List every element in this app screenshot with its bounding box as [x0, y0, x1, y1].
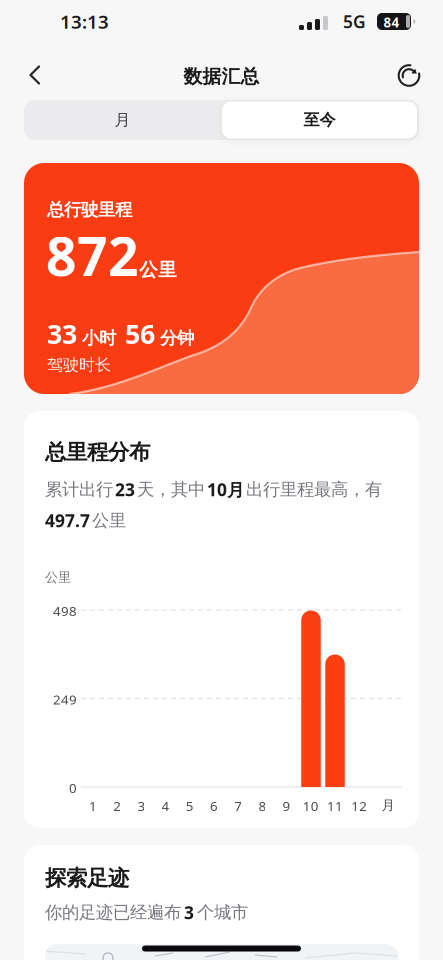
staticText: 23	[115, 478, 135, 501]
staticText: 9	[283, 797, 291, 815]
staticText: 1	[89, 797, 97, 815]
staticText: 56	[125, 316, 155, 351]
staticText: 总里程分布	[45, 439, 150, 465]
staticText: 3	[184, 901, 194, 924]
staticText: 总行驶里程	[47, 199, 132, 220]
staticText: 84	[383, 13, 399, 31]
button[interactable]: 月	[24, 100, 221, 140]
staticText: 月	[381, 797, 394, 813]
staticText: 11	[327, 797, 343, 815]
staticText: 498	[53, 602, 77, 620]
staticText: 249	[53, 690, 77, 708]
staticText: 3	[137, 797, 145, 815]
staticText: 公里	[45, 569, 71, 585]
staticText: 5	[186, 797, 194, 815]
staticText: 公里	[92, 510, 126, 531]
staticText: 至今	[303, 110, 335, 130]
staticText: 8	[258, 797, 266, 815]
staticText: 个城市	[197, 902, 248, 923]
staticText: 出行里程最高，有	[246, 479, 382, 500]
staticText: 10月	[207, 478, 244, 501]
staticText: 公里	[139, 258, 177, 281]
staticText: 驾驶时长	[47, 355, 111, 375]
staticText: 7	[234, 797, 242, 815]
staticText: 探索足迹	[45, 865, 129, 891]
staticText: 天，其中	[137, 479, 205, 500]
staticText: 0	[69, 779, 77, 797]
staticText: 你的足迹已经遍布	[45, 902, 181, 923]
staticText: 5G	[343, 10, 366, 33]
staticText: 12	[351, 797, 367, 815]
staticText: 月	[114, 110, 130, 130]
button[interactable]: Back	[12, 53, 56, 97]
button[interactable]: Refresh	[387, 53, 431, 97]
staticText: 33	[47, 316, 77, 351]
staticText: 累计出行	[45, 479, 113, 500]
button[interactable]: Map of footprints	[45, 944, 398, 960]
staticText: 6	[210, 797, 218, 815]
staticText: 497.7	[45, 509, 90, 532]
staticText: 2	[113, 797, 121, 815]
staticText: 10	[303, 797, 319, 815]
button[interactable]: 至今	[222, 101, 417, 138]
staticText: 13:13	[60, 9, 109, 34]
staticText: 小时	[82, 328, 116, 349]
staticText: 4	[162, 797, 170, 815]
staticText: 分钟	[160, 328, 194, 349]
staticText: 872	[46, 220, 139, 291]
staticText: 数据汇总	[183, 65, 259, 88]
